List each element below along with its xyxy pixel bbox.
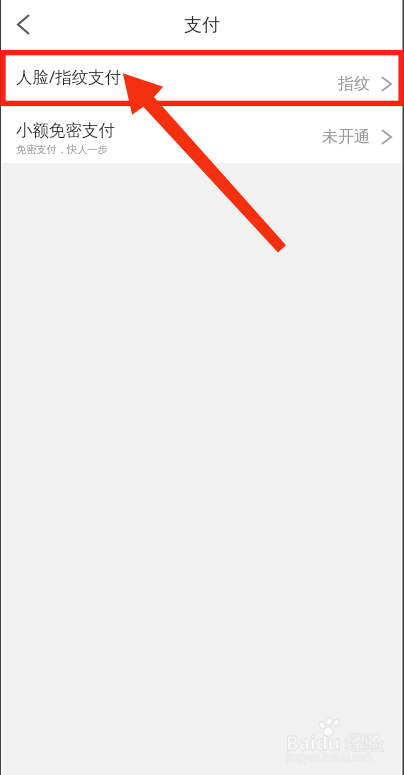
staticText: 指纹	[338, 74, 370, 94]
staticText: Baidu 经验	[286, 730, 383, 756]
staticText: 支付	[184, 14, 220, 37]
staticText: Baidu 经验	[286, 730, 383, 756]
staticText: jingyan.baidu.com	[286, 750, 373, 764]
staticText: 未开通	[322, 127, 370, 147]
staticText: 人脸/指纹支付	[16, 65, 122, 88]
staticText: 免密支付，快人一步	[16, 143, 108, 156]
staticText: 小额免密支付	[16, 120, 115, 141]
button[interactable]: 小额免密支付	[0, 107, 404, 163]
button[interactable]: 人脸/指纹支付	[0, 47, 404, 106]
staticText: jingyan.baidu.com	[286, 750, 373, 764]
button[interactable]: Back	[6, 7, 40, 41]
